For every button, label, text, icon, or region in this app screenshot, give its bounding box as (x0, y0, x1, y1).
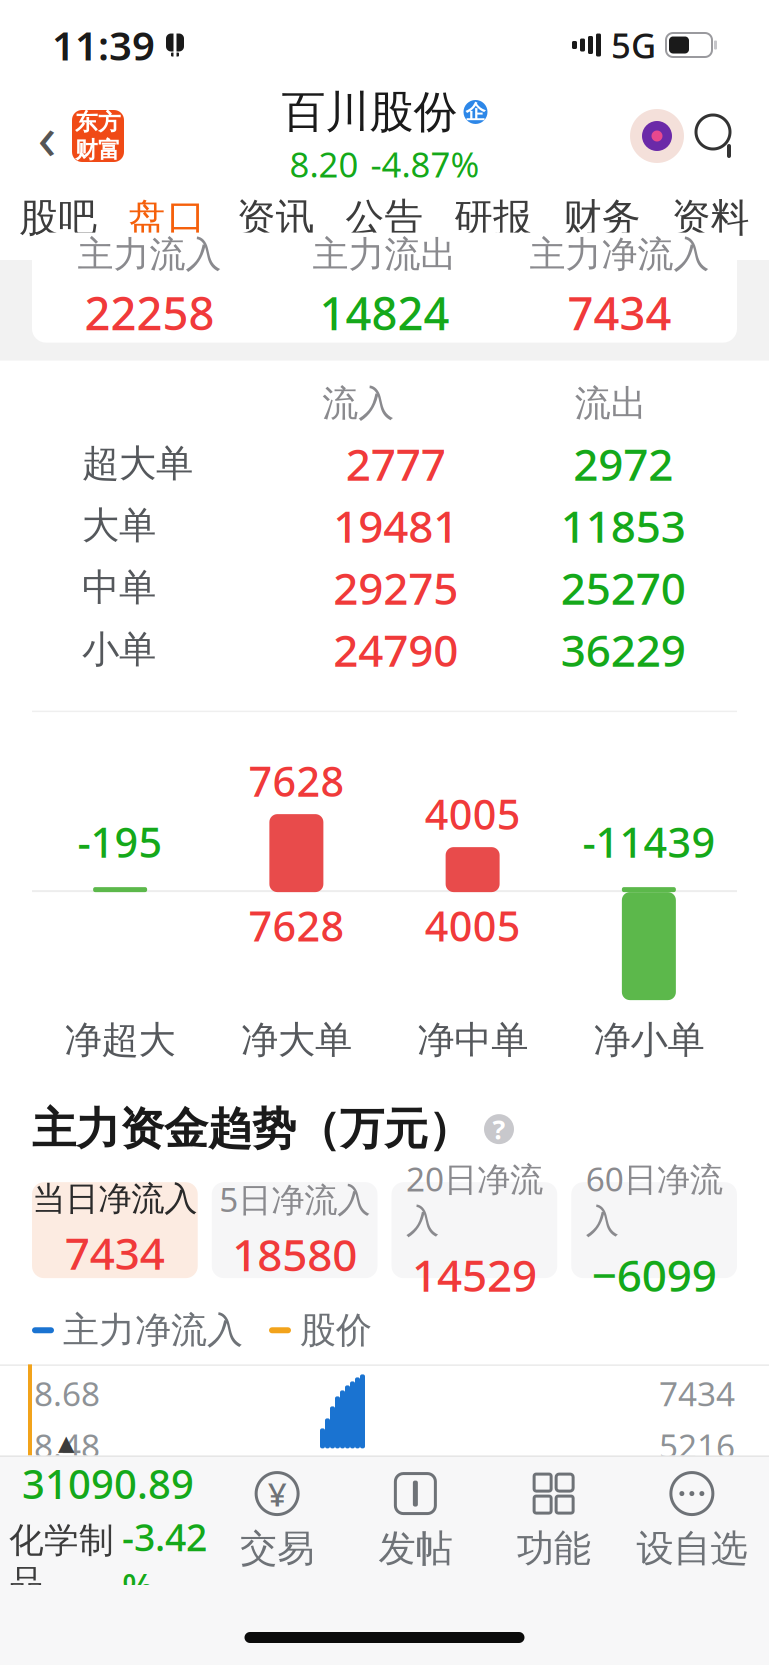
staticText: 8.20 (289, 141, 358, 187)
staticText: 功能 (517, 1526, 591, 1571)
staticText: 发帖 (378, 1526, 452, 1571)
staticText: 18580 (232, 1225, 357, 1283)
staticText: 7628 (248, 753, 344, 808)
staticText: 25270 (561, 558, 686, 617)
staticText: 百川股份 (281, 85, 457, 139)
staticText: 29275 (333, 558, 458, 617)
button[interactable]: 财务 (548, 180, 656, 260)
button[interactable]: 5日净流入 (212, 1182, 378, 1278)
staticText: 主力净流入 (63, 1308, 243, 1352)
staticText: 盘口 (128, 194, 206, 241)
button[interactable]: 说明 (484, 1111, 514, 1147)
staticText: 7434 (65, 1223, 165, 1282)
staticText: 财务 (563, 194, 641, 241)
button[interactable]: 研报 (439, 180, 548, 260)
staticText: 公告 (345, 194, 423, 241)
staticText: 大单 (82, 503, 156, 549)
staticText: 流入 (322, 381, 394, 426)
button[interactable]: ¥ (208, 1457, 346, 1585)
staticText: 14529 (412, 1246, 537, 1304)
staticText: 财富 (75, 136, 121, 164)
staticText: 股价 (300, 1308, 372, 1352)
staticText: 5日净流入 (219, 1177, 370, 1221)
staticText: 主力净流入 (529, 232, 709, 277)
staticText: 超大单 (82, 441, 193, 487)
staticText: 19481 (333, 496, 458, 555)
staticText: 净中单 (417, 1017, 528, 1063)
staticText: 4005 (425, 898, 521, 953)
staticText: 主力流入 (77, 232, 221, 277)
staticText: -11439 (582, 814, 715, 869)
staticText: 7628 (248, 898, 344, 953)
staticText: 7434 (567, 283, 671, 343)
staticText: ‹ (37, 95, 56, 177)
button[interactable]: 返回 (22, 106, 72, 166)
staticText: −6099 (592, 1246, 717, 1304)
button[interactable]: 发帖 (346, 1457, 484, 1585)
staticText: 4005 (425, 786, 521, 841)
staticText: 2972 (573, 434, 673, 493)
staticText: 5G (611, 22, 656, 68)
staticText: -3.42% (122, 1512, 207, 1611)
staticText: 22258 (84, 283, 214, 343)
staticText: 净大单 (241, 1017, 352, 1063)
button[interactable]: 搜索 (687, 106, 747, 166)
staticText: 当日净流入 (32, 1178, 197, 1219)
staticText: ? (492, 1111, 505, 1147)
staticText: 资讯 (237, 194, 315, 241)
staticText: 31090.89 (22, 1457, 194, 1510)
button[interactable]: 设自选 (623, 1457, 761, 1585)
staticText: 36229 (561, 620, 686, 679)
staticText: 8.48 (34, 1423, 100, 1468)
button[interactable]: 20日净流入 (391, 1182, 557, 1278)
button[interactable]: 60日净流入 (571, 1182, 737, 1278)
staticText: 流出 (575, 381, 647, 426)
button[interactable]: 资讯 (221, 180, 330, 260)
staticText: 净小单 (593, 1017, 704, 1063)
staticText: 主力流出 (312, 232, 456, 277)
staticText: ¥ (268, 1471, 287, 1516)
staticText: -4.87% (370, 141, 479, 187)
button[interactable]: 盘口 (113, 180, 221, 260)
button[interactable]: 智能助手 (627, 106, 687, 166)
button[interactable]: 公告 (330, 180, 439, 260)
staticText: 研报 (454, 194, 532, 241)
staticText: ▲ (58, 1431, 74, 1455)
staticText: -195 (78, 814, 163, 869)
button[interactable]: 功能 (484, 1457, 623, 1585)
staticText: 设自选 (636, 1526, 747, 1571)
button[interactable]: 股吧 (4, 180, 113, 260)
staticText: 交易 (240, 1526, 314, 1571)
button[interactable]: 化学制品指数 (8, 1431, 208, 1611)
button[interactable]: 东方财富 (72, 110, 124, 162)
staticText: 中单 (82, 565, 156, 611)
staticText: 14824 (319, 283, 449, 343)
staticText: 东方 (75, 108, 121, 136)
staticText: 5216 (659, 1423, 735, 1468)
staticText: 24790 (333, 620, 458, 679)
staticText: 净超大 (65, 1017, 176, 1063)
staticText: 资料 (672, 194, 750, 241)
staticText: 化学制品 (9, 1519, 114, 1604)
staticText: 股吧 (19, 194, 97, 241)
button[interactable]: 资料 (656, 180, 765, 260)
button[interactable]: 当日净流入 (32, 1182, 198, 1278)
staticText: 企 (465, 100, 485, 124)
staticText: 7434 (659, 1371, 735, 1415)
staticText: 小单 (82, 627, 156, 673)
staticText: 11:39 (52, 18, 155, 71)
staticText: 2777 (346, 434, 446, 493)
staticText: 8.68 (34, 1371, 100, 1415)
staticText: 60日净流入 (586, 1156, 723, 1241)
staticText: 11853 (561, 496, 686, 555)
staticText: 20日净流入 (406, 1156, 543, 1241)
staticText: 主力资金趋势（万元） (32, 1102, 472, 1156)
